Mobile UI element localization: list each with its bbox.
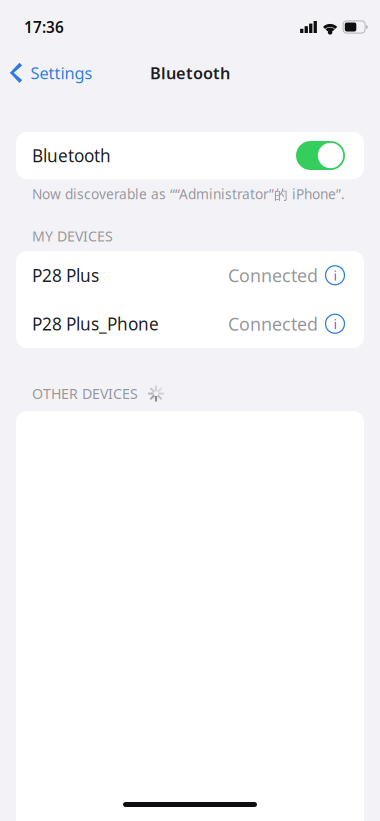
button[interactable]: More Info, P28 Plus_Phone: [318, 302, 352, 346]
staticText: Now discoverable as ““Administrator”的 iP…: [32, 185, 345, 203]
staticText: 17:36: [24, 17, 64, 37]
staticText: i: [333, 266, 336, 284]
staticText: i: [333, 315, 336, 333]
staticText: Settings: [30, 62, 92, 84]
button[interactable]: Bluetooth: [296, 141, 345, 170]
staticText: OTHER DEVICES: [32, 384, 138, 403]
staticText: Bluetooth: [150, 62, 230, 84]
button[interactable]: More Info, P28 Plus: [318, 253, 352, 297]
staticText: MY DEVICES: [32, 226, 113, 246]
button[interactable]: Settings: [0, 56, 102, 90]
staticText: Bluetooth: [32, 144, 111, 167]
staticText: Connected: [228, 312, 318, 336]
staticText: Connected: [228, 263, 318, 287]
button[interactable]: P28 Plus: [16, 251, 364, 299]
button[interactable]: P28 Plus_Phone: [16, 299, 364, 348]
staticText: P28 Plus: [32, 263, 99, 287]
staticText: P28 Plus_Phone: [32, 312, 159, 335]
